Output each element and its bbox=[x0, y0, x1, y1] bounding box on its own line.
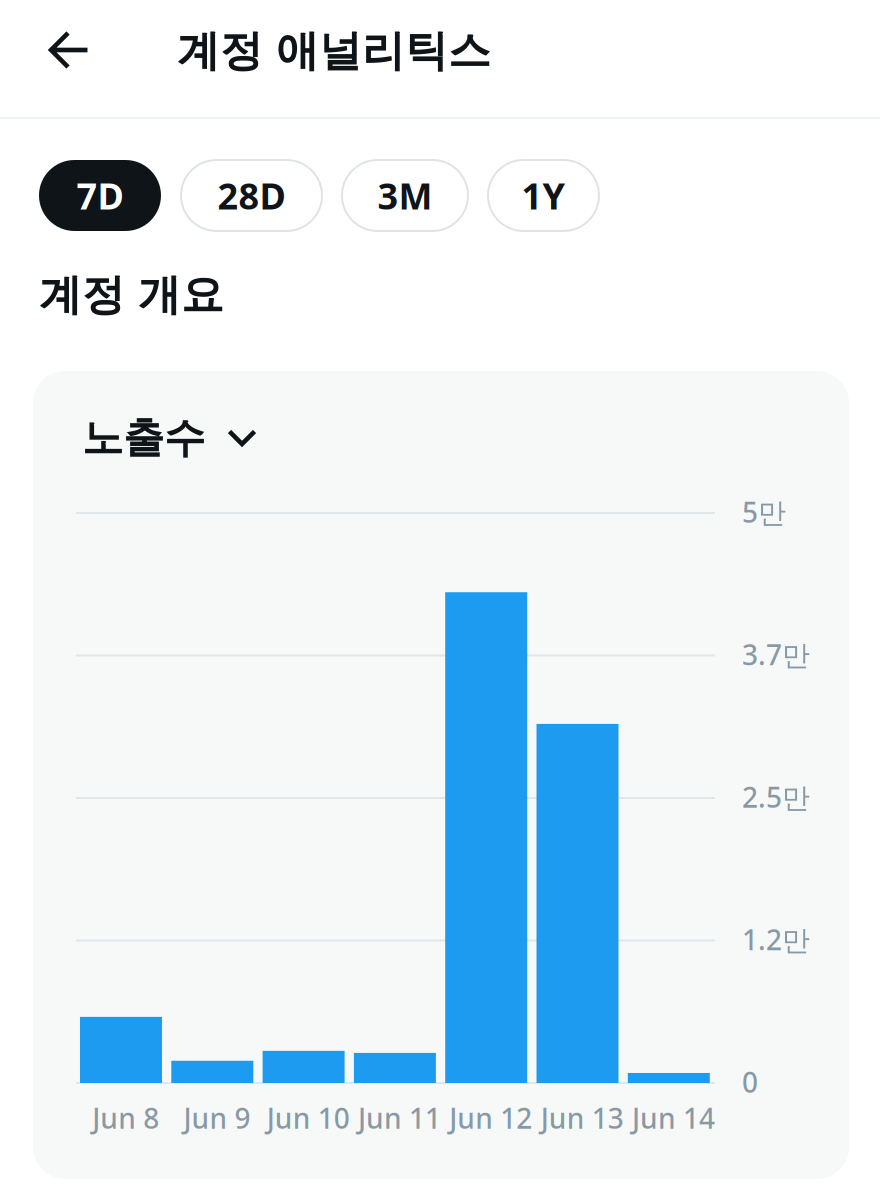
staticText: 계정 애널리틱스 bbox=[177, 25, 491, 77]
button[interactable]: 노출수 bbox=[82, 413, 257, 463]
staticText: 7D bbox=[76, 172, 123, 219]
staticText: Jun 14 bbox=[632, 1099, 715, 1137]
button[interactable]: 7D bbox=[39, 160, 161, 231]
staticText: 28D bbox=[217, 172, 285, 219]
staticText: Jun 13 bbox=[541, 1099, 624, 1137]
button[interactable]: 3M bbox=[342, 160, 468, 231]
staticText: 2.5만 bbox=[742, 778, 810, 816]
button[interactable]: 1Y bbox=[488, 160, 599, 231]
staticText: 3M bbox=[377, 172, 432, 219]
staticText: 5만 bbox=[742, 493, 786, 531]
staticText: 1.2만 bbox=[742, 921, 810, 958]
staticText: Jun 10 bbox=[267, 1099, 350, 1137]
staticText: 3.7만 bbox=[742, 636, 810, 673]
button[interactable]: Back bbox=[23, 0, 115, 100]
staticText: Jun 9 bbox=[183, 1099, 250, 1137]
button[interactable]: 28D bbox=[181, 160, 322, 231]
staticText: Jun 8 bbox=[92, 1099, 159, 1137]
staticText: 노출수 bbox=[82, 413, 205, 463]
staticText: 계정 개요 bbox=[39, 269, 224, 321]
staticText: 1Y bbox=[521, 172, 565, 219]
staticText: Jun 12 bbox=[449, 1099, 532, 1137]
staticText: Jun 11 bbox=[358, 1099, 441, 1137]
staticText: 0 bbox=[742, 1063, 758, 1101]
